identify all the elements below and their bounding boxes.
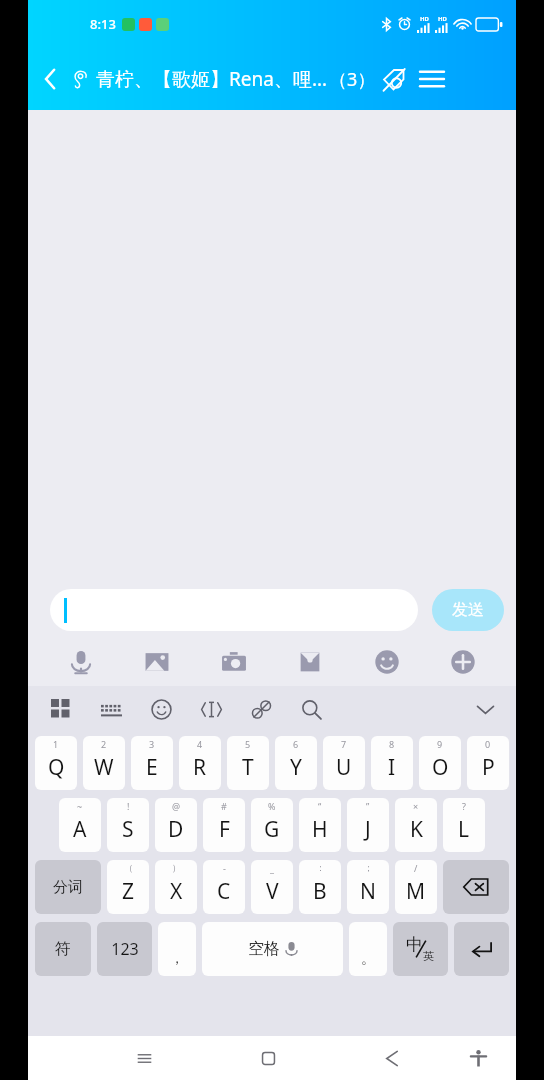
- staticText: 2: [101, 738, 107, 750]
- button[interactable]: !: [107, 798, 149, 852]
- staticText: D: [168, 815, 184, 844]
- button[interactable]: ~: [59, 798, 101, 852]
- button[interactable]: 。: [349, 922, 387, 976]
- button[interactable]: [50, 589, 418, 631]
- staticText: Y: [290, 753, 302, 782]
- button[interactable]: 1: [35, 736, 77, 790]
- staticText: ；: [364, 862, 373, 873]
- button[interactable]: Text editing: [194, 692, 228, 726]
- staticText: 9: [437, 738, 443, 750]
- staticText: H: [312, 815, 328, 844]
- staticText: Z: [122, 877, 135, 906]
- button[interactable]: ×: [395, 798, 437, 852]
- staticText: K: [410, 815, 423, 844]
- button[interactable]: Keyboard layout: [94, 692, 128, 726]
- button[interactable]: Menu: [412, 59, 452, 99]
- staticText: ：: [316, 862, 325, 873]
- button[interactable]: ?: [443, 798, 485, 852]
- button[interactable]: Home: [248, 1038, 288, 1078]
- button[interactable]: @: [155, 798, 197, 852]
- button[interactable]: 6: [275, 736, 317, 790]
- button[interactable]: ：: [299, 860, 341, 914]
- button[interactable]: Back: [372, 1038, 412, 1078]
- staticText: %: [268, 800, 276, 812]
- button[interactable]: Voice message: [57, 638, 105, 686]
- button[interactable]: ；: [347, 860, 389, 914]
- button[interactable]: Clipboard: [244, 692, 278, 726]
- button[interactable]: Apps: [44, 692, 78, 726]
- staticText: W: [94, 753, 114, 782]
- staticText: S: [122, 815, 134, 844]
- button[interactable]: Mute: [376, 62, 410, 96]
- button[interactable]: （: [107, 860, 149, 914]
- button[interactable]: 123: [97, 922, 152, 976]
- staticText: U: [336, 753, 352, 782]
- button[interactable]: 3: [131, 736, 173, 790]
- staticText: -: [223, 862, 226, 874]
- staticText: E: [146, 753, 158, 782]
- staticText: #: [221, 800, 227, 812]
- button[interactable]: Hide keyboard: [468, 692, 502, 726]
- button[interactable]: Enter: [454, 922, 509, 976]
- staticText: 8:13: [90, 15, 116, 33]
- staticText: HD: [420, 15, 429, 23]
- button[interactable]: “: [299, 798, 341, 852]
- button[interactable]: 空格: [202, 922, 343, 976]
- button[interactable]: Photo: [133, 638, 181, 686]
- button[interactable]: 5: [227, 736, 269, 790]
- staticText: HD: [438, 15, 447, 23]
- staticText: L: [458, 815, 470, 844]
- button[interactable]: ，: [158, 922, 196, 976]
- staticText: 8: [389, 738, 395, 750]
- button[interactable]: Search: [294, 692, 328, 726]
- staticText: （: [124, 862, 133, 873]
- staticText: Q: [48, 753, 65, 782]
- staticText: /: [414, 862, 418, 874]
- button[interactable]: Sticker: [363, 638, 411, 686]
- button[interactable]: 0: [467, 736, 509, 790]
- button[interactable]: %: [251, 798, 293, 852]
- button[interactable]: /: [395, 860, 437, 914]
- button[interactable]: ”: [347, 798, 389, 852]
- staticText: F: [219, 815, 230, 844]
- button[interactable]: _: [251, 860, 293, 914]
- button[interactable]: 发送: [432, 589, 504, 631]
- staticText: 。: [361, 950, 375, 968]
- button[interactable]: 4: [179, 736, 221, 790]
- button[interactable]: 符: [35, 922, 91, 976]
- staticText: !: [127, 800, 130, 812]
- staticText: 7: [341, 738, 347, 750]
- staticText: B: [313, 877, 327, 906]
- staticText: R: [193, 753, 207, 782]
- button[interactable]: Red packet: [286, 638, 334, 686]
- button[interactable]: Camera: [210, 638, 258, 686]
- button[interactable]: Switch Chinese English: [393, 922, 448, 976]
- staticText: M: [406, 877, 426, 906]
- staticText: （3）: [329, 67, 376, 92]
- staticText: ?: [462, 800, 466, 812]
- button[interactable]: Accessibility: [458, 1038, 498, 1078]
- staticText: O: [432, 753, 449, 782]
- staticText: 中: [406, 934, 423, 955]
- button[interactable]: 7: [323, 736, 365, 790]
- button[interactable]: Emoji: [144, 692, 178, 726]
- button[interactable]: 8: [371, 736, 413, 790]
- button[interactable]: Recents: [124, 1038, 164, 1078]
- staticText: ）: [172, 862, 181, 873]
- staticText: I: [388, 753, 396, 782]
- button[interactable]: -: [203, 860, 245, 914]
- button[interactable]: ）: [155, 860, 197, 914]
- staticText: _: [270, 862, 274, 874]
- button[interactable]: 9: [419, 736, 461, 790]
- button[interactable]: Back: [28, 48, 72, 110]
- button[interactable]: Backspace: [443, 860, 509, 914]
- staticText: 5: [245, 738, 251, 750]
- staticText: 4: [197, 738, 203, 750]
- staticText: C: [217, 877, 231, 906]
- button[interactable]: More: [439, 638, 487, 686]
- button[interactable]: 分词: [35, 860, 101, 914]
- button[interactable]: #: [203, 798, 245, 852]
- staticText: 分词: [53, 878, 83, 897]
- button[interactable]: 2: [83, 736, 125, 790]
- staticText: 1: [53, 738, 59, 750]
